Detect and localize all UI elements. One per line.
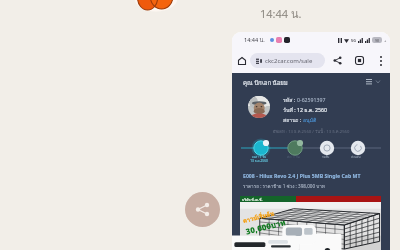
- staticText: ส่ง : 1 วัน: [287, 154, 300, 159]
- staticText: ดาวน์เริ่มต้น: [242, 209, 275, 226]
- staticText: รอรับ: [322, 154, 330, 159]
- staticText: 14:44 น.: [260, 5, 302, 22]
- staticText: ckc2car.com/sale: [265, 57, 313, 65]
- staticText: 98: [375, 38, 379, 43]
- staticText: 30,000บาท: [244, 216, 287, 239]
- staticText: คุณ ปัก\อก น้อยม: [243, 78, 288, 88]
- staticText: วันที่ :: [283, 106, 297, 114]
- staticText: 12 ธ.ค. 2560: [297, 106, 327, 114]
- staticText: จอง : 1 วัน 13 ธ.ค.2560: [250, 154, 268, 164]
- button[interactable]: Share page: [330, 53, 345, 68]
- staticText: ส่งมอบ: [351, 154, 361, 159]
- button[interactable]: Tabs: [352, 53, 367, 68]
- staticText: ราคารถ : ราคาป้าย 1 ช่วง : 398,000 บาท: [243, 183, 325, 190]
- button[interactable]: 14:44 น.: [232, 32, 390, 250]
- staticText: 5G: [351, 38, 356, 43]
- staticText: สถานะ :: [283, 116, 303, 124]
- button[interactable]: Home: [235, 54, 248, 67]
- staticText: +: [384, 38, 387, 43]
- button[interactable]: บริษัท ซี.เค.ซี.: [240, 196, 381, 250]
- button[interactable]: Share: [185, 192, 220, 227]
- button[interactable]: Menu: [366, 79, 380, 84]
- staticText: รหัส :: [283, 96, 297, 104]
- staticText: อนุมัติ: [303, 116, 317, 124]
- staticText: บริษัท ซี.เค.ซี.: [242, 197, 263, 202]
- staticText: อัพเดท : 13 ธ.ค.2560 / วันนี้ : 13 ธ.ค.2…: [232, 128, 390, 135]
- staticText: 14:44 น.: [244, 36, 265, 45]
- staticText: 0-62591397: [297, 96, 326, 103]
- staticText: E008 - Hilux Revo 2.4 J Plus 5MB Single …: [243, 172, 361, 179]
- button[interactable]: More options: [373, 53, 388, 68]
- button[interactable]: ckc2car.com/sale: [250, 53, 325, 68]
